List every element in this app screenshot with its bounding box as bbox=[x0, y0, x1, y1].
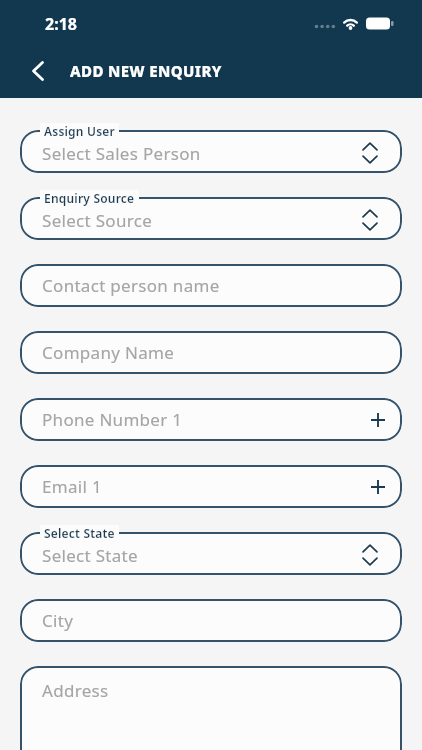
button[interactable]: Email 1 bbox=[20, 465, 402, 508]
staticText: ADD NEW ENQUIRY bbox=[70, 61, 222, 81]
staticText: Enquiry Source bbox=[44, 190, 135, 206]
staticText: Company Name bbox=[42, 341, 175, 364]
button[interactable]: Select Sales Person bbox=[20, 130, 402, 173]
button[interactable]: Select State bbox=[20, 532, 402, 575]
staticText: Select Source bbox=[42, 209, 153, 232]
button[interactable]: Address bbox=[20, 666, 402, 750]
staticText: Contact person name bbox=[42, 274, 220, 297]
staticText: Select State bbox=[42, 544, 138, 567]
button[interactable]: City bbox=[20, 599, 402, 642]
button[interactable]: Select Source bbox=[20, 197, 402, 240]
staticText: 2:18 bbox=[45, 13, 77, 35]
staticText: Email 1 bbox=[42, 475, 102, 498]
staticText: Select State bbox=[44, 525, 115, 541]
button[interactable]: Company Name bbox=[20, 331, 402, 374]
button[interactable]: Phone Number 1 bbox=[20, 398, 402, 441]
staticText: Phone Number 1 bbox=[42, 408, 183, 431]
button[interactable]: Contact person name bbox=[20, 264, 402, 307]
staticText: City bbox=[42, 609, 74, 632]
staticText: Assign User bbox=[44, 123, 115, 139]
staticText: Select Sales Person bbox=[42, 142, 201, 165]
staticText: Address bbox=[42, 679, 109, 702]
button[interactable] bbox=[20, 53, 56, 89]
